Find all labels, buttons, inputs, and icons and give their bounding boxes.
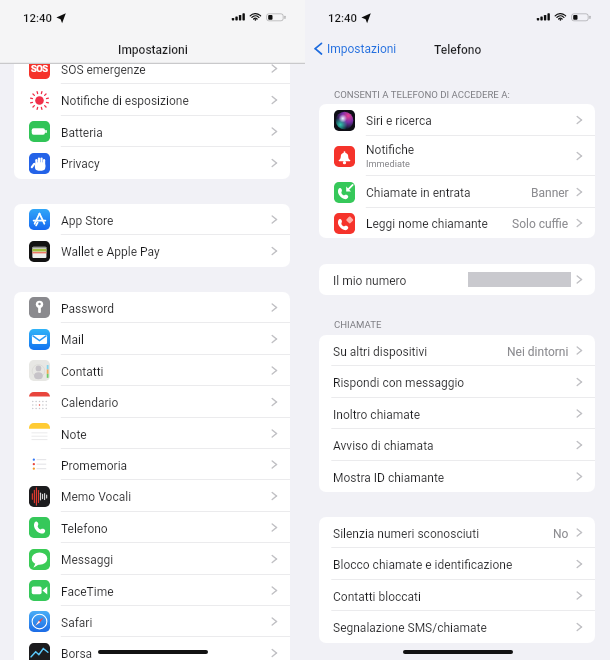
staticText: Nei dintorni	[507, 345, 569, 359]
button[interactable]: Rispondi con messaggio	[319, 366, 595, 398]
staticText: FaceTime	[61, 585, 114, 599]
button[interactable]: Avviso di chiamata	[319, 429, 595, 461]
button[interactable]: Il mio numero	[319, 264, 595, 295]
staticText: CONSENTI A TELEFONO DI ACCEDERE A:	[334, 89, 510, 100]
staticText: Telefono	[434, 43, 482, 57]
staticText: Impostazioni	[118, 43, 188, 57]
staticText: Password	[61, 302, 115, 316]
staticText: Impostazioni	[327, 42, 397, 56]
staticText: Messaggi	[61, 553, 114, 567]
staticText: Rispondi con messaggio	[333, 376, 465, 390]
staticText: Mostra ID chiamante	[333, 471, 445, 485]
staticText: Calendario	[61, 396, 119, 410]
staticText: Siri e ricerca	[366, 114, 432, 128]
staticText: Leggi nome chiamante	[366, 217, 488, 231]
staticText: Borsa	[61, 647, 93, 660]
staticText: Privacy	[61, 157, 100, 171]
button[interactable]: Chiamate in entrata	[319, 176, 595, 208]
staticText: Inoltro chiamate	[333, 408, 421, 422]
button[interactable]: Leggi nome chiamante	[319, 208, 595, 238]
button[interactable]: Calendario	[14, 386, 290, 418]
staticText: Silenzia numeri sconosciuti	[333, 527, 480, 541]
staticText: 12:40	[23, 11, 52, 24]
button[interactable]: Segnalazione SMS/chiamate	[319, 611, 595, 643]
staticText: Contatti	[61, 365, 104, 379]
staticText: Segnalazione SMS/chiamate	[333, 621, 487, 635]
staticText: Mail	[61, 333, 84, 347]
staticText: Su altri dispositivi	[333, 345, 428, 359]
staticText: Solo cuffie	[512, 217, 569, 231]
staticText: Promemoria	[61, 459, 128, 473]
button[interactable]: Memo Vocali	[14, 480, 290, 512]
staticText: SOS	[31, 63, 48, 74]
staticText: Safari	[61, 616, 93, 630]
button[interactable]: Messaggi	[14, 543, 290, 575]
button[interactable]: Borsa	[14, 637, 290, 660]
button[interactable]: Contatti	[14, 355, 290, 386]
button[interactable]: Mostra ID chiamante	[319, 461, 595, 492]
button[interactable]: Blocco chiamate e identificazione	[319, 548, 595, 580]
staticText: Memo Vocali	[61, 490, 132, 504]
staticText: App Store	[61, 214, 114, 228]
staticText: No	[553, 527, 569, 541]
button[interactable]: SOS	[14, 53, 290, 84]
staticText: Telefono	[61, 522, 108, 536]
staticText: Notifiche	[366, 143, 415, 157]
button[interactable]: Inoltro chiamate	[319, 398, 595, 429]
button[interactable]: Promemoria	[14, 449, 290, 480]
button[interactable]: Silenzia numeri sconosciuti	[319, 517, 595, 548]
staticText: Banner	[531, 186, 569, 200]
button[interactable]: Wallet e Apple Pay	[14, 235, 290, 267]
button[interactable]: Telefono	[14, 512, 290, 543]
staticText: Chiamate in entrata	[366, 186, 471, 200]
staticText: Batteria	[61, 126, 103, 140]
button[interactable]: Notifiche	[319, 136, 595, 176]
staticText: Il mio numero	[333, 274, 407, 288]
staticText: Immediate	[366, 158, 410, 169]
button[interactable]: Su altri dispositivi	[319, 335, 595, 366]
button[interactable]: Note	[14, 418, 290, 449]
button[interactable]: Privacy	[14, 147, 290, 179]
staticText: CHIAMATE	[334, 319, 382, 330]
button[interactable]: Siri e ricerca	[319, 104, 595, 136]
button[interactable]: Indietro a Impostazioni	[312, 40, 397, 58]
staticText: 12:40	[328, 11, 357, 24]
staticText: Notifiche di esposizione	[61, 94, 189, 108]
button[interactable]: Contatti bloccati	[319, 580, 595, 611]
staticText: Contatti bloccati	[333, 590, 421, 604]
staticText: Note	[61, 428, 87, 442]
button[interactable]: FaceTime	[14, 575, 290, 606]
button[interactable]: App Store	[14, 204, 290, 235]
button[interactable]: Mail	[14, 323, 290, 355]
button[interactable]: Safari	[14, 606, 290, 637]
staticText: Wallet e Apple Pay	[61, 245, 160, 259]
staticText: Blocco chiamate e identificazione	[333, 558, 513, 572]
staticText: Avviso di chiamata	[333, 439, 434, 453]
button[interactable]: Password	[14, 292, 290, 323]
staticText: SOS emergenze	[61, 63, 146, 77]
button[interactable]: Batteria	[14, 116, 290, 147]
button[interactable]: Notifiche di esposizione	[14, 84, 290, 116]
